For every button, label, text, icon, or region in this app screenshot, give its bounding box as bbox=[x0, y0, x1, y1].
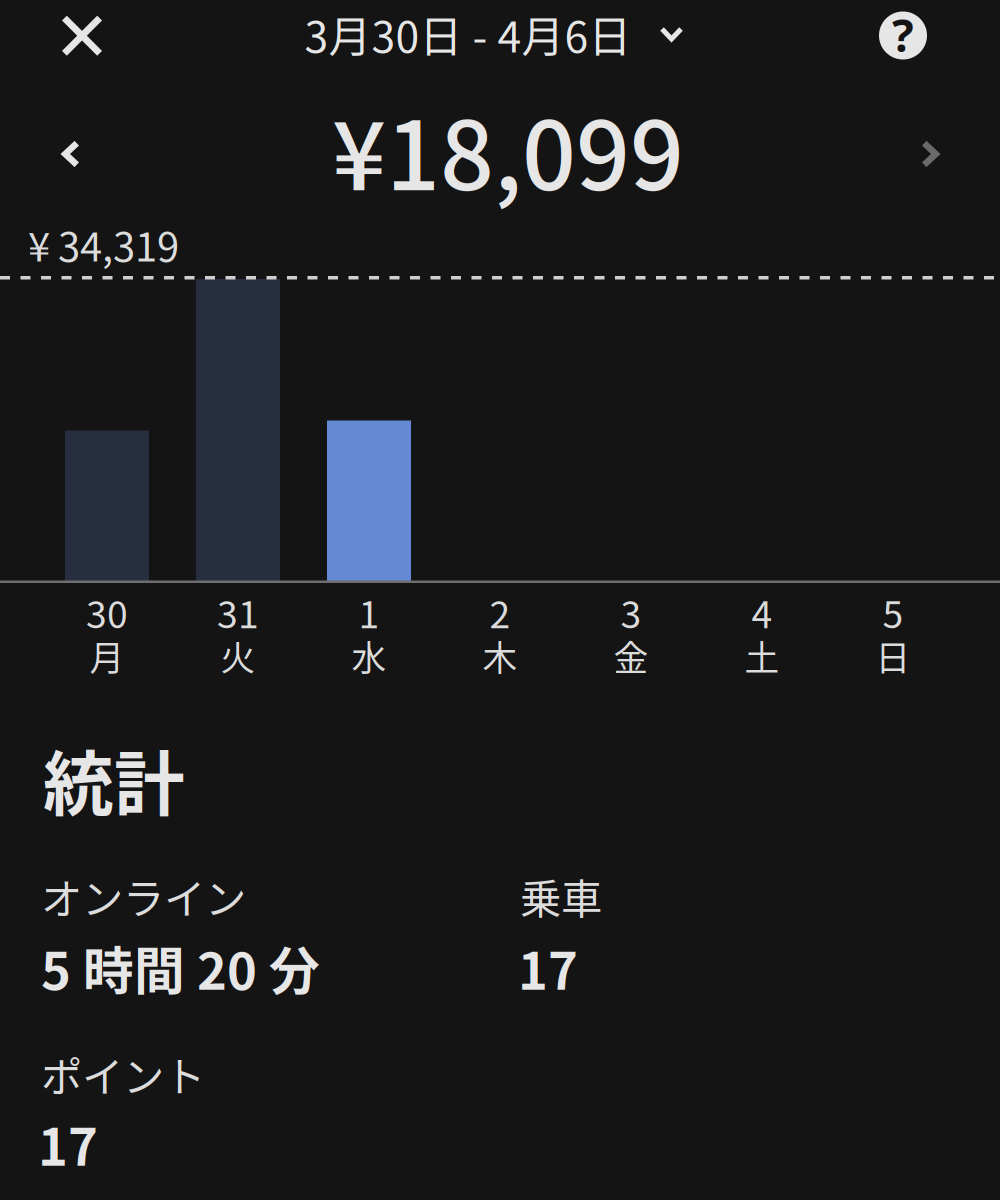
button[interactable]: 31 bbox=[172, 596, 303, 684]
button[interactable]: 30 bbox=[41, 596, 172, 684]
button[interactable]: 2 bbox=[434, 596, 565, 684]
staticText: 1 bbox=[358, 585, 379, 639]
staticText: ¥18,099 bbox=[332, 80, 684, 218]
button[interactable]: 3 bbox=[565, 596, 696, 684]
button[interactable]: 4 bbox=[696, 596, 827, 684]
staticText: 2 bbox=[489, 585, 510, 639]
button[interactable]: 1 bbox=[303, 596, 434, 684]
staticText: 金 bbox=[613, 631, 648, 681]
staticText: 31 bbox=[217, 585, 259, 639]
button[interactable]: 3月30日 - 4月6日 bbox=[254, 0, 734, 70]
button[interactable]: 5 bbox=[827, 596, 958, 684]
staticText: 17 bbox=[38, 1107, 98, 1180]
staticText: ¥ 34,319 bbox=[28, 215, 179, 273]
staticText: 水 bbox=[351, 631, 386, 681]
staticText: オンライン bbox=[41, 866, 246, 926]
staticText: ? bbox=[892, 4, 914, 65]
staticText: 土 bbox=[744, 631, 779, 681]
staticText: 5 bbox=[882, 585, 903, 639]
staticText: 月 bbox=[89, 631, 124, 681]
staticText: 3 bbox=[620, 585, 641, 639]
staticText: 17 bbox=[518, 931, 578, 1004]
staticText: 木 bbox=[482, 631, 517, 681]
staticText: 統計 bbox=[43, 728, 185, 830]
staticText: 乗車 bbox=[520, 866, 602, 926]
staticText: 5 時間 20 分 bbox=[41, 931, 320, 1004]
staticText: 4 bbox=[751, 585, 772, 639]
button[interactable]: 閉じる bbox=[40, 0, 124, 72]
button[interactable]: ヘルプ bbox=[865, 0, 941, 71]
staticText: ポイント bbox=[41, 1044, 205, 1104]
staticText: 火 bbox=[220, 631, 255, 681]
staticText: 30 bbox=[86, 585, 128, 639]
staticText: 3月30日 - 4月6日 bbox=[304, 3, 631, 65]
staticText: 日 bbox=[875, 631, 910, 681]
button[interactable]: 前の週 bbox=[35, 118, 107, 190]
button[interactable]: 次の週 bbox=[894, 118, 966, 190]
